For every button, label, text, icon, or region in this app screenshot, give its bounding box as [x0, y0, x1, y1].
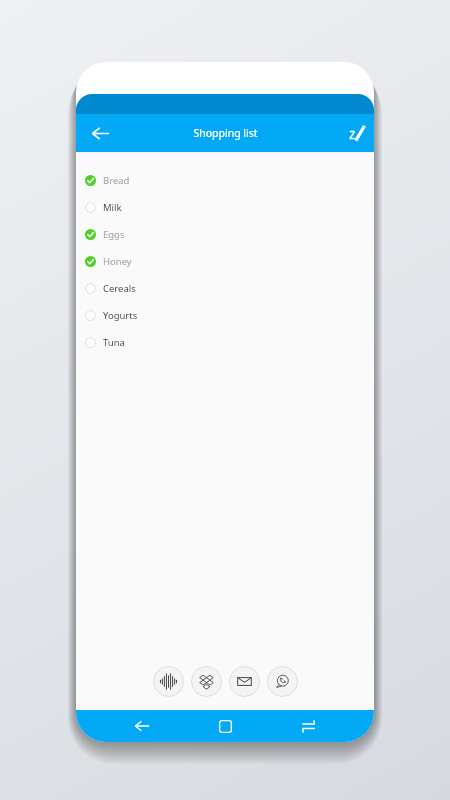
- button[interactable]: Eggs: [76, 221, 374, 248]
- button[interactable]: Dropbox: [191, 666, 222, 697]
- button[interactable]: Honey: [76, 248, 374, 275]
- button[interactable]: Recents: [291, 710, 325, 742]
- staticText: Milk: [103, 201, 122, 214]
- button[interactable]: WhatsApp: [267, 666, 298, 697]
- button[interactable]: Bread: [76, 167, 374, 194]
- staticText: Honey: [103, 255, 132, 268]
- button[interactable]: Yogurts: [76, 302, 374, 329]
- button[interactable]: Edit: [341, 117, 373, 149]
- staticText: Tuna: [103, 336, 125, 349]
- button[interactable]: Back: [125, 710, 159, 742]
- button[interactable]: Home: [208, 710, 242, 742]
- button[interactable]: Milk: [76, 194, 374, 221]
- button[interactable]: Email: [229, 666, 260, 697]
- button[interactable]: Tuna: [76, 329, 374, 356]
- button[interactable]: Voice note: [153, 666, 184, 697]
- staticText: Cereals: [103, 282, 136, 295]
- button[interactable]: Cereals: [76, 275, 374, 302]
- staticText: Eggs: [103, 228, 125, 241]
- staticText: Yogurts: [103, 309, 138, 322]
- staticText: Shopping list: [193, 126, 258, 140]
- staticText: Bread: [103, 174, 130, 187]
- button[interactable]: Back: [83, 116, 117, 150]
